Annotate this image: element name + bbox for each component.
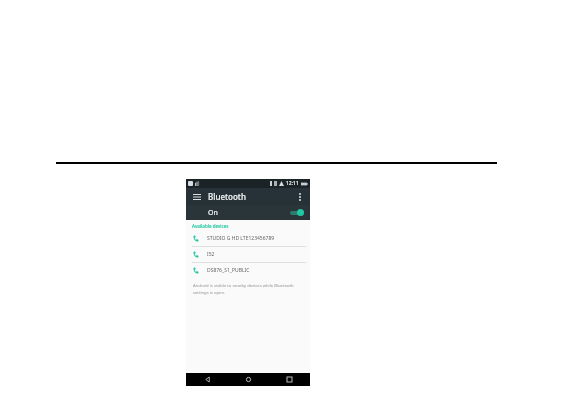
staticText: DS876_S1_PUBLIC (207, 267, 250, 274)
staticText: Bluetooth (208, 191, 246, 202)
button[interactable]: More options (294, 191, 305, 202)
button[interactable]: On (186, 205, 310, 220)
button[interactable]: Back (186, 373, 228, 386)
staticText: On (208, 208, 218, 218)
button[interactable]: Home (228, 373, 269, 386)
staticText: I52 (207, 251, 215, 258)
button[interactable]: Recent apps (269, 373, 310, 386)
button[interactable]: DS876_S1_PUBLIC (186, 263, 310, 278)
button[interactable]: Open navigation menu (191, 191, 202, 202)
button[interactable]: I52 (186, 247, 310, 262)
staticText: STUDIO G HD LTE123456789 (207, 235, 275, 242)
staticText: Available devices (192, 223, 229, 229)
staticText: Android is visible to nearby devices whi… (193, 283, 302, 295)
staticText: 12:11 (286, 180, 299, 187)
button[interactable]: STUDIO G HD LTE123456789 (186, 231, 310, 246)
